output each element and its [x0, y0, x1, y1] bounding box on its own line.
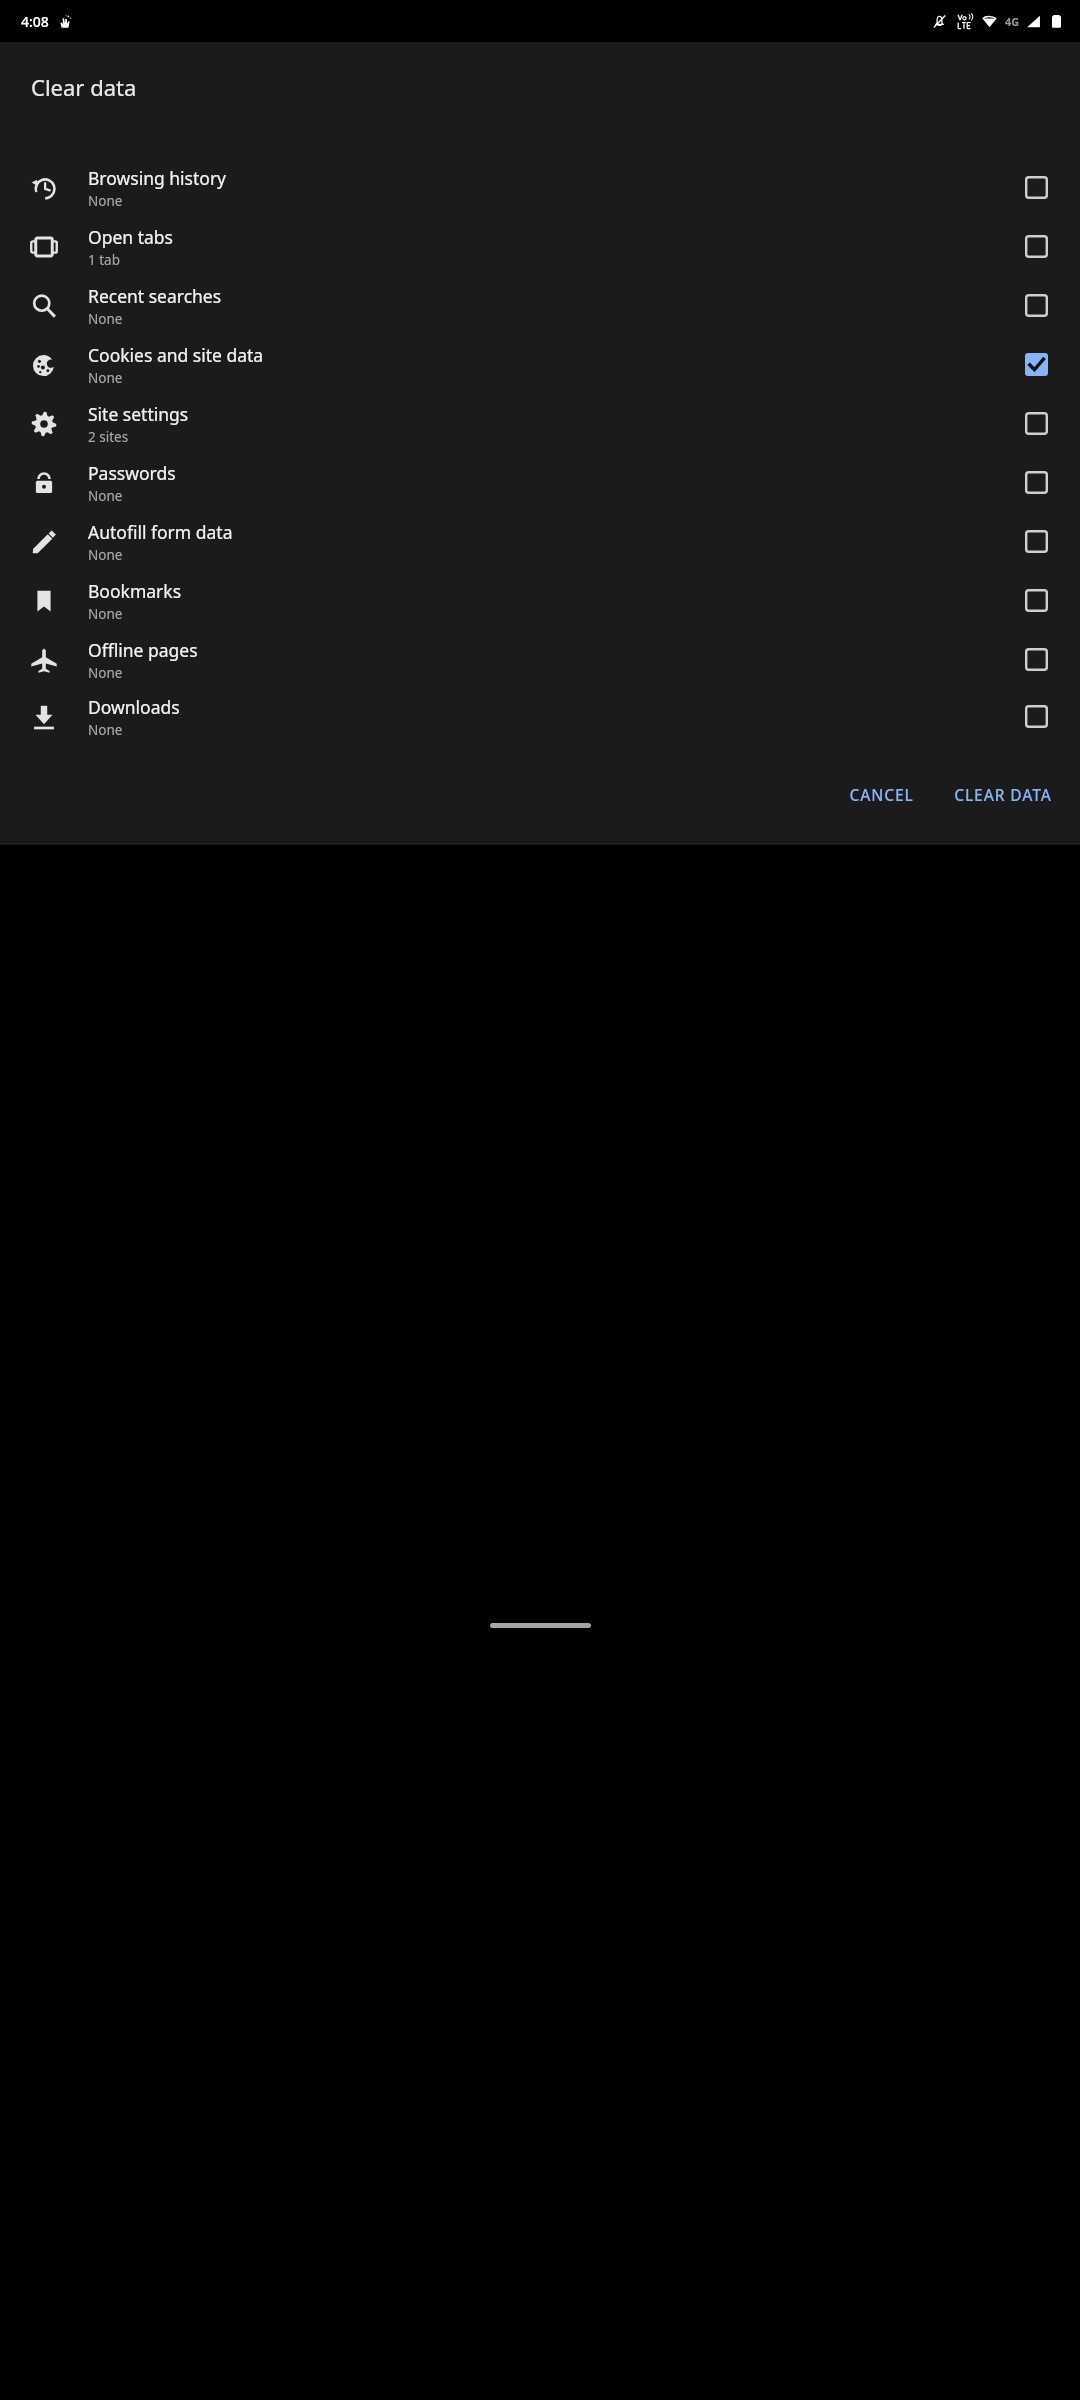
staticText: None [88, 721, 123, 739]
staticText: 2 sites [88, 428, 129, 446]
button[interactable]: Cookies and site data [0, 335, 1080, 394]
staticText: 4:08 [21, 12, 49, 31]
button[interactable]: Open tabs [992, 217, 1080, 276]
button[interactable]: Offline pages [992, 630, 1080, 689]
button[interactable]: Autofill form data [992, 512, 1080, 571]
staticText: CLEAR DATA [954, 784, 1052, 805]
staticText: 1 tab [88, 251, 120, 269]
staticText: None [88, 369, 123, 387]
button[interactable]: Downloads [992, 689, 1080, 744]
button[interactable]: Site settings [992, 394, 1080, 453]
staticText: Recent searches [88, 284, 222, 308]
staticText: Downloads [88, 695, 180, 719]
button[interactable]: Bookmarks [0, 571, 1080, 630]
staticText: None [88, 664, 123, 682]
button[interactable]: Site settings [0, 394, 1080, 453]
button[interactable]: Bookmarks [992, 571, 1080, 630]
button[interactable]: CANCEL [838, 776, 925, 813]
button[interactable]: Open tabs [0, 217, 1080, 276]
staticText: None [88, 605, 123, 623]
button[interactable]: Browsing history [992, 158, 1080, 217]
button[interactable]: Autofill form data [0, 512, 1080, 571]
staticText: Open tabs [88, 225, 173, 249]
button[interactable]: Browsing history [0, 158, 1080, 217]
staticText: CANCEL [849, 784, 914, 805]
button[interactable]: Downloads [0, 689, 1080, 744]
staticText: Browsing history [88, 166, 227, 190]
staticText: None [88, 310, 123, 328]
button[interactable]: Recent searches [992, 276, 1080, 335]
staticText: None [88, 487, 123, 505]
button[interactable]: Passwords [0, 453, 1080, 512]
button[interactable]: Cookies and site data [992, 335, 1080, 394]
staticText: None [88, 546, 123, 564]
staticText: 4G [1005, 14, 1020, 29]
staticText: Autofill form data [88, 520, 233, 544]
button[interactable]: Passwords [992, 453, 1080, 512]
button[interactable]: Recent searches [0, 276, 1080, 335]
staticText: Site settings [88, 402, 189, 426]
staticText: Passwords [88, 461, 176, 485]
staticText: None [88, 192, 123, 210]
button[interactable]: CLEAR DATA [943, 776, 1063, 813]
staticText: Cookies and site data [88, 343, 264, 367]
staticText: Bookmarks [88, 579, 182, 603]
staticText: Offline pages [88, 638, 198, 662]
staticText: Clear data [31, 72, 137, 102]
button[interactable]: Offline pages [0, 630, 1080, 689]
